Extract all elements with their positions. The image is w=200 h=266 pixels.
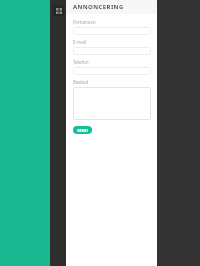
button[interactable] — [73, 87, 151, 120]
staticText: Telefon — [73, 59, 89, 65]
staticText: E-mail — [73, 39, 87, 45]
staticText: Firmanavn — [73, 19, 96, 25]
staticText: Besked — [73, 79, 89, 85]
button[interactable] — [73, 27, 151, 35]
button[interactable] — [73, 67, 151, 75]
button[interactable]: Menu — [53, 5, 64, 16]
button[interactable]: SEND — [73, 126, 92, 134]
staticText: SEND — [77, 128, 88, 133]
staticText: ANNONCERING — [73, 3, 124, 11]
button[interactable] — [73, 47, 151, 55]
